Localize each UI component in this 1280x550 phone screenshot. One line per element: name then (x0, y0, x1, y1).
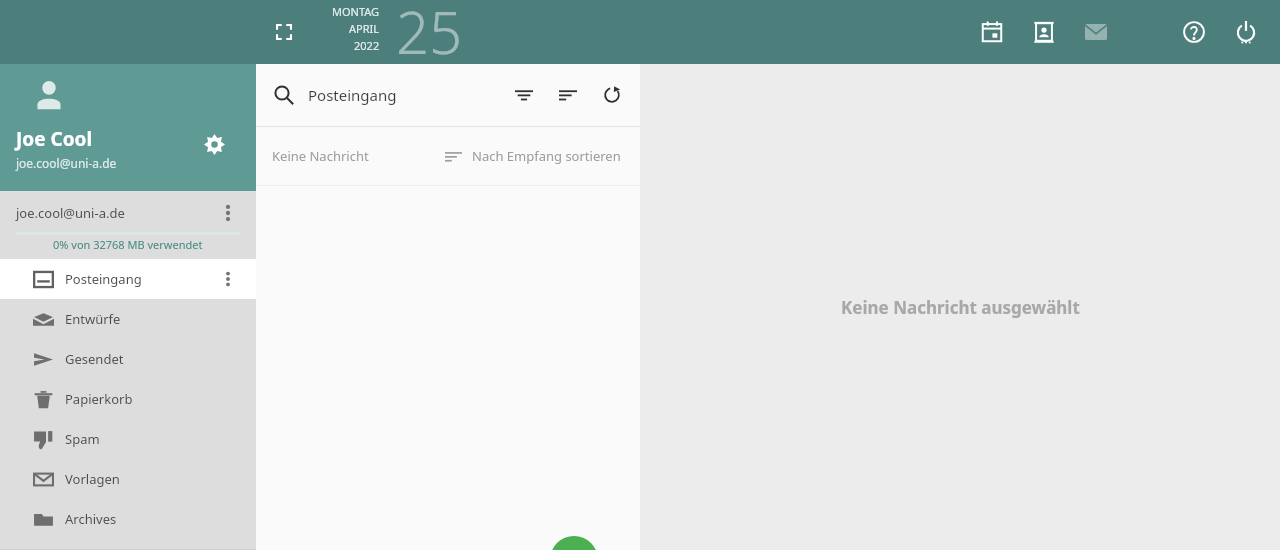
staticText: Papierkorb (65, 390, 133, 408)
staticText: Posteingang (65, 270, 142, 288)
button[interactable]: Einstellungen (196, 126, 232, 162)
staticText: 2022 (354, 38, 380, 53)
staticText: joe.cool@uni-a.de (16, 155, 117, 171)
button[interactable]: Kontooptionen (210, 195, 246, 231)
button[interactable]: Archives (0, 499, 256, 539)
staticText: Posteingang (308, 85, 397, 105)
staticText: Keine Nachricht (272, 147, 369, 165)
button[interactable]: Posteingang (256, 64, 640, 126)
button[interactable]: Aktualisieren (590, 73, 634, 117)
staticText: Joe Cool (16, 126, 93, 152)
button[interactable]: joe.cool@uni-a.de (0, 191, 256, 235)
button[interactable]: Papierkorb (0, 379, 256, 419)
button[interactable]: Filtern (502, 73, 546, 117)
staticText: Spam (65, 430, 100, 448)
button[interactable]: Hilfe (1168, 6, 1220, 58)
staticText: Gesendet (65, 350, 124, 368)
button[interactable]: E-Mail (1070, 6, 1122, 58)
button[interactable]: Sortieren (546, 73, 590, 117)
staticText: Entwürfe (65, 310, 121, 328)
button[interactable]: Spam (0, 419, 256, 459)
button[interactable]: Nach Empfang sortieren (441, 141, 625, 171)
button[interactable]: Vorlagen (0, 459, 256, 499)
button[interactable]: Posteingang (0, 259, 256, 299)
staticText: Keine Nachricht ausgewählt (841, 296, 1080, 319)
button[interactable]: Gesendet (0, 339, 256, 379)
staticText: Archives (65, 510, 117, 528)
button[interactable]: Kalender (966, 6, 1018, 58)
staticText: MONTAG (332, 4, 380, 19)
staticText: APRIL (349, 21, 380, 36)
button[interactable]: Entwürfe (0, 299, 256, 339)
staticText: Vorlagen (65, 470, 120, 488)
button[interactable]: Abmelden (1220, 6, 1272, 58)
staticText: joe.cool@uni-a.de (16, 204, 125, 222)
button[interactable]: Kontakte (1018, 6, 1070, 58)
staticText: 25 (396, 0, 463, 56)
button[interactable]: Vollbild (270, 18, 298, 46)
staticText: Nach Empfang sortieren (472, 147, 621, 165)
button[interactable]: Neue Nachricht verfassen (550, 536, 598, 550)
staticText: 0% von 32768 MB verwendet (53, 237, 203, 252)
button[interactable]: Ordneroptionen (211, 262, 245, 296)
